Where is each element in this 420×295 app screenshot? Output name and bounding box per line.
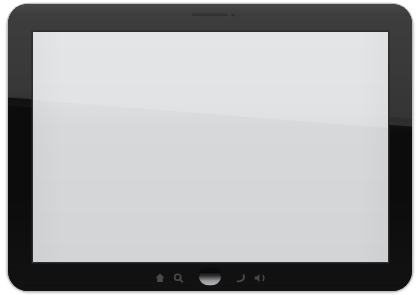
button[interactable]	[0, 0, 420, 295]
button[interactable]: Back	[228, 268, 248, 290]
button[interactable]: Home screen	[150, 268, 170, 290]
button[interactable]: Home button	[195, 268, 225, 290]
button[interactable]: Volume	[250, 268, 270, 290]
button[interactable]: Search	[173, 268, 193, 290]
